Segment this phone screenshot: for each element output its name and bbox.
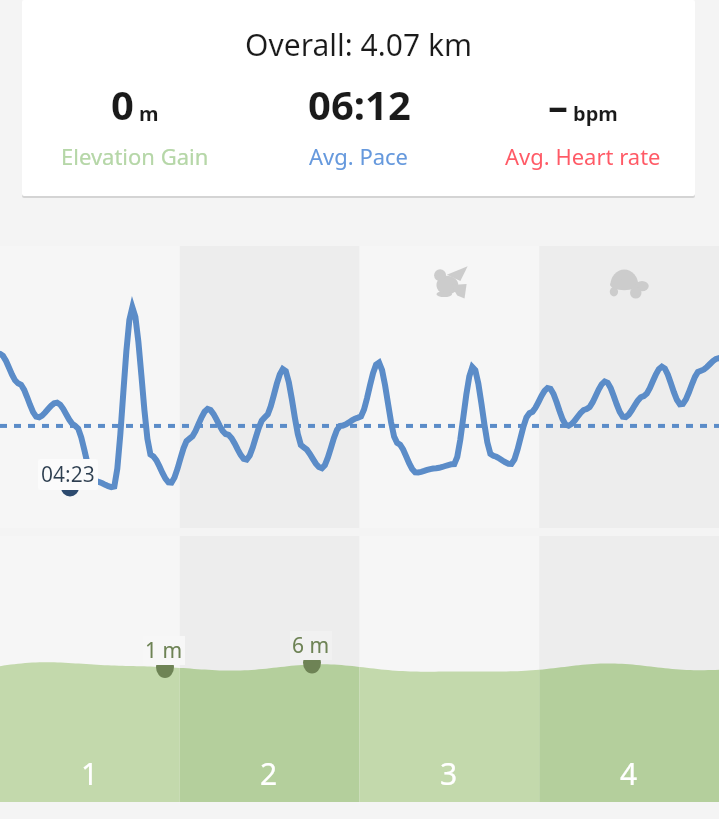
button[interactable]: 06:12	[247, 77, 471, 171]
staticText: 6 m	[292, 631, 330, 660]
button[interactable]: 1 m	[0, 536, 719, 802]
other: Slowest pace	[603, 258, 655, 310]
other: Fastest pace	[425, 258, 477, 310]
button[interactable]: 4	[539, 744, 719, 802]
button[interactable]: 1	[0, 744, 179, 802]
staticText: 1 m	[145, 636, 183, 665]
staticText: 1	[81, 753, 99, 794]
staticText: 3	[440, 753, 458, 794]
staticText: 06:12	[308, 77, 411, 131]
button[interactable]: Overall: 4.07 km	[22, 0, 695, 196]
staticText: Avg. Pace	[309, 141, 409, 171]
staticText: 0	[111, 77, 134, 131]
button[interactable]: 0	[22, 77, 247, 171]
button[interactable]: Fastest pace	[0, 246, 719, 528]
staticText: bpm	[573, 100, 618, 127]
button[interactable]: 3	[359, 744, 539, 802]
staticText: 04:23	[41, 460, 95, 489]
staticText: 2	[260, 753, 278, 794]
staticText: Avg. Heart rate	[505, 141, 661, 171]
button[interactable]: 2	[179, 744, 359, 802]
staticText: m	[139, 100, 159, 127]
staticText: 4	[620, 753, 638, 794]
staticText: Elevation Gain	[61, 141, 209, 171]
staticText: Overall: 4.07 km	[22, 24, 695, 65]
button[interactable]: –	[471, 77, 695, 171]
staticText: –	[548, 77, 568, 131]
